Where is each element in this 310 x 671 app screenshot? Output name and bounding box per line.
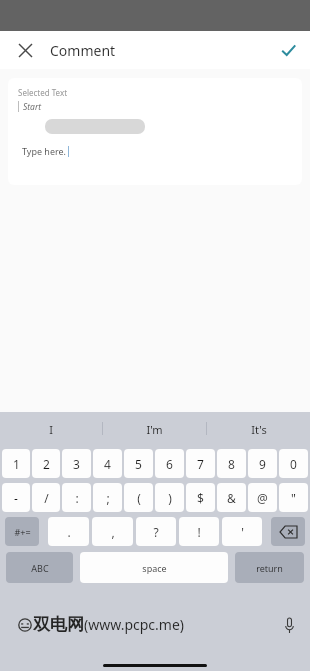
button[interactable]: 5 bbox=[124, 449, 153, 478]
button[interactable]: ! bbox=[179, 517, 219, 546]
button[interactable]: Dictation bbox=[278, 614, 300, 636]
staticText: Comment bbox=[50, 41, 116, 60]
staticText: / bbox=[44, 490, 49, 506]
button[interactable]: @ bbox=[248, 483, 277, 512]
button[interactable]: ( bbox=[124, 483, 153, 512]
staticText: Start bbox=[23, 101, 42, 113]
staticText: 5 bbox=[135, 456, 142, 472]
button[interactable]: " bbox=[279, 483, 308, 512]
staticText: #+= bbox=[14, 526, 31, 538]
button[interactable]: #+= bbox=[5, 517, 39, 546]
button[interactable]: 1 bbox=[2, 449, 30, 478]
button[interactable]: - bbox=[2, 483, 30, 512]
button[interactable]: : bbox=[62, 483, 91, 512]
staticText: : bbox=[75, 490, 79, 506]
button[interactable]: Backspace bbox=[271, 517, 305, 546]
button[interactable]: 3 bbox=[62, 449, 91, 478]
button[interactable]: I'm bbox=[103, 412, 206, 446]
staticText: space bbox=[142, 562, 167, 574]
button[interactable]: ' bbox=[222, 517, 262, 546]
staticText: - bbox=[14, 490, 18, 506]
button[interactable]: space bbox=[80, 552, 228, 583]
staticText: ' bbox=[241, 524, 244, 540]
staticText: 7 bbox=[197, 456, 204, 472]
button[interactable]: $ bbox=[186, 483, 215, 512]
staticText: 6 bbox=[166, 456, 173, 472]
button[interactable]: Selected Text bbox=[8, 78, 302, 185]
staticText: I'm bbox=[146, 422, 163, 437]
staticText: 双电网 bbox=[33, 614, 84, 635]
button[interactable]: . bbox=[48, 517, 89, 546]
button[interactable]: 8 bbox=[217, 449, 246, 478]
staticText: 1 bbox=[13, 456, 20, 472]
staticText: 2 bbox=[43, 456, 50, 472]
staticText: return bbox=[256, 562, 283, 574]
staticText: I bbox=[49, 422, 53, 437]
button[interactable]: It's bbox=[207, 412, 310, 446]
button[interactable]: I bbox=[0, 412, 102, 446]
staticText: . bbox=[67, 524, 71, 540]
button[interactable]: 0 bbox=[279, 449, 308, 478]
button[interactable]: 2 bbox=[32, 449, 60, 478]
staticText: 0 bbox=[290, 456, 297, 472]
staticText: ABC bbox=[31, 562, 49, 574]
button[interactable]: return bbox=[235, 552, 304, 583]
staticText: (www.pcpc.me) bbox=[84, 615, 185, 634]
button[interactable]: ) bbox=[155, 483, 184, 512]
staticText: & bbox=[227, 490, 236, 506]
button[interactable]: ABC bbox=[6, 552, 73, 583]
staticText: ; bbox=[106, 490, 110, 506]
staticText: ) bbox=[168, 490, 172, 506]
staticText: It's bbox=[251, 422, 267, 437]
button[interactable]: Close bbox=[10, 35, 40, 65]
button[interactable]: ? bbox=[136, 517, 176, 546]
staticText: Selected Text bbox=[18, 87, 68, 98]
button[interactable]: / bbox=[32, 483, 60, 512]
button[interactable]: & bbox=[217, 483, 246, 512]
staticText: , bbox=[111, 524, 115, 540]
staticText: 4 bbox=[104, 456, 111, 472]
staticText: 8 bbox=[228, 456, 235, 472]
staticText: " bbox=[291, 490, 296, 506]
button[interactable]: 9 bbox=[248, 449, 277, 478]
staticText: @ bbox=[257, 490, 268, 506]
staticText: Type here. bbox=[22, 145, 67, 157]
staticText: ? bbox=[153, 524, 159, 540]
staticText: 3 bbox=[73, 456, 80, 472]
staticText: ( bbox=[137, 490, 141, 506]
staticText: $ bbox=[197, 490, 204, 506]
button[interactable]: Confirm bbox=[274, 36, 302, 64]
button[interactable]: 4 bbox=[93, 449, 122, 478]
staticText: ! bbox=[197, 524, 201, 540]
button[interactable]: 6 bbox=[155, 449, 184, 478]
button[interactable]: 7 bbox=[186, 449, 215, 478]
button[interactable]: ; bbox=[93, 483, 122, 512]
button[interactable]: , bbox=[92, 517, 133, 546]
staticText: 9 bbox=[259, 456, 266, 472]
